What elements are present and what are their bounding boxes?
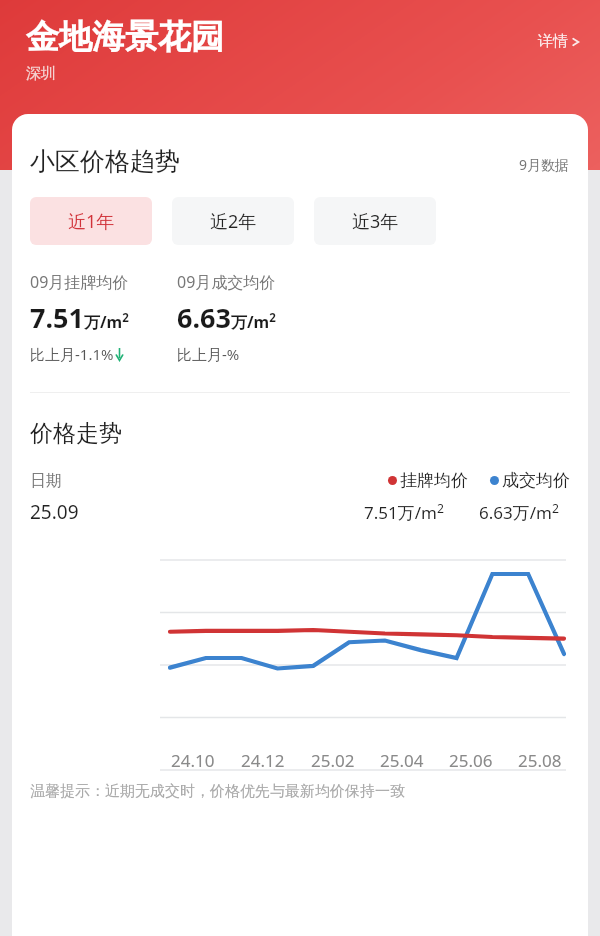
staticText: 温馨提示：近期无成交时，价格优先与最新均价保持一致 — [30, 782, 405, 801]
staticText: 比上月-% — [177, 344, 240, 364]
staticText: 9月数据 — [519, 155, 570, 174]
button[interactable]: 近2年 — [172, 197, 294, 245]
staticText: 7.51万/m2 — [364, 500, 444, 524]
staticText: 挂牌均价 — [400, 470, 468, 491]
staticText: 深圳 — [26, 64, 56, 83]
staticText: 日期 — [30, 471, 62, 491]
staticText: 25.06 — [449, 749, 493, 772]
staticText: 25.04 — [380, 749, 424, 772]
staticText: 金地海景花园 — [26, 16, 224, 58]
staticText: 25.08 — [518, 749, 562, 772]
staticText: 6.63万/m2 — [479, 500, 559, 524]
staticText: 详情 — [538, 32, 568, 51]
staticText: 比上月-1.1% — [30, 344, 114, 364]
button[interactable]: 详情 — [532, 28, 586, 55]
staticText: 24.10 — [171, 749, 215, 772]
staticText: 24.12 — [241, 749, 285, 772]
staticText: 小区价格趋势 — [30, 146, 180, 177]
button[interactable]: 近3年 — [314, 197, 436, 245]
staticText: 6.63万/m2 — [177, 299, 276, 336]
staticText: 近2年 — [210, 209, 257, 234]
button[interactable]: 近1年 — [30, 197, 152, 245]
staticText: 价格走势 — [30, 419, 122, 448]
staticText: 09月成交均价 — [177, 271, 276, 293]
staticText: 成交均价 — [502, 470, 570, 491]
staticText: 近1年 — [68, 209, 115, 234]
staticText: 25.09 — [30, 499, 79, 525]
staticText: 25.02 — [311, 749, 355, 772]
staticText: 09月挂牌均价 — [30, 271, 129, 293]
staticText: 近3年 — [352, 209, 399, 234]
staticText: 7.51万/m2 — [30, 299, 129, 336]
